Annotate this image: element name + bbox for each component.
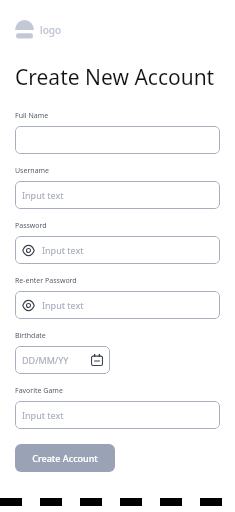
button[interactable]: Input text <box>15 401 220 429</box>
staticText: Create Account <box>32 452 98 464</box>
staticText: Favorite Game <box>15 386 63 396</box>
staticText: Input text <box>42 244 84 256</box>
staticText: Full Name <box>15 111 49 121</box>
button[interactable]: DD/MM/YY <box>15 346 110 374</box>
other: Show password <box>22 244 35 257</box>
staticText: Input text <box>22 189 64 201</box>
button[interactable]: Show password <box>15 236 220 264</box>
button[interactable]: Input text <box>15 181 220 209</box>
button[interactable]: logo <box>15 20 62 40</box>
other: Pick date <box>91 354 103 366</box>
button[interactable] <box>15 126 220 154</box>
staticText: Username <box>15 166 50 176</box>
staticText: logo <box>40 23 62 37</box>
staticText: Input text <box>42 299 84 311</box>
staticText: Create New Account <box>15 63 215 92</box>
staticText: Re-enter Password <box>15 276 77 286</box>
button[interactable]: Create Account <box>15 444 115 472</box>
other: Show password <box>22 299 35 312</box>
staticText: Password <box>15 221 47 231</box>
staticText: Birthdate <box>15 331 46 341</box>
staticText: DD/MM/YY <box>22 354 69 366</box>
staticText: Input text <box>22 409 64 421</box>
button[interactable]: Show password <box>15 291 220 319</box>
